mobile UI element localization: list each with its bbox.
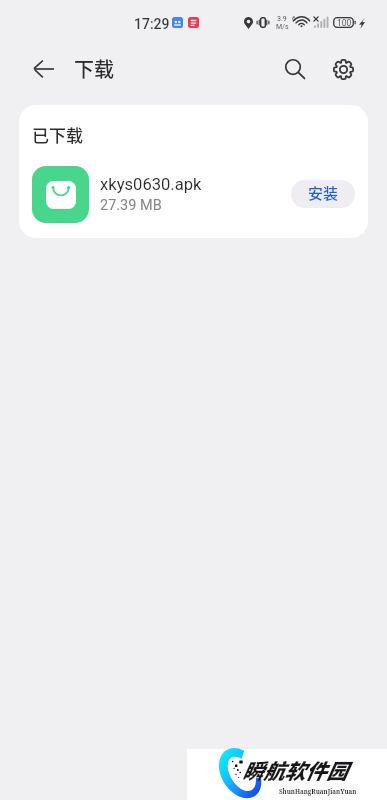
button[interactable]: Search <box>278 52 312 86</box>
button[interactable]: Settings <box>326 52 360 86</box>
staticText: 已下载 <box>32 122 83 147</box>
staticText: 17:29 <box>134 16 170 32</box>
staticText: M/s <box>276 23 289 31</box>
staticText: 瞬航软件园 <box>242 755 347 785</box>
button[interactable]: Back <box>22 57 65 80</box>
staticText: 6 <box>292 15 296 23</box>
staticText: ShunHangRuanJianYuan <box>279 787 357 795</box>
button[interactable]: xkys0630.apk <box>19 157 368 231</box>
staticText: 100 <box>337 18 352 28</box>
staticText: 下载 <box>74 54 114 83</box>
staticText: 27.39 MB <box>100 197 162 214</box>
button[interactable]: 安装 <box>291 180 355 208</box>
staticText: 3.9 <box>277 15 287 23</box>
staticText: xkys0630.apk <box>100 175 202 194</box>
staticText: 安装 <box>308 182 339 204</box>
